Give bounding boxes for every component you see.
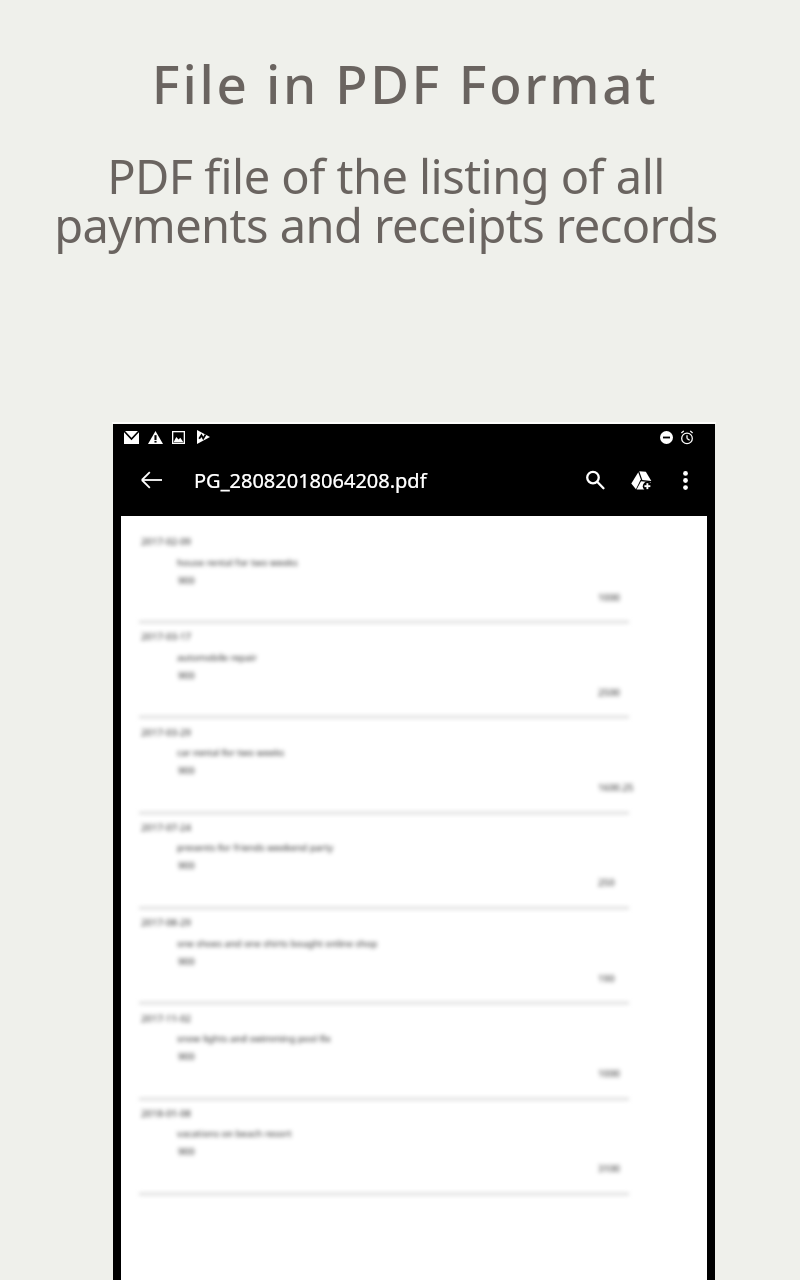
button[interactable]: Save to Drive <box>619 458 663 502</box>
staticText: snow lights and swimming pool fix <box>177 1032 331 1045</box>
staticText: 2500 <box>598 686 620 699</box>
button[interactable]: Search <box>573 458 617 502</box>
staticText: 2017-07-24 <box>141 821 192 834</box>
staticText: 190 <box>598 972 615 985</box>
staticText: 2017-11-02 <box>141 1012 192 1025</box>
staticText: 250 <box>598 876 615 889</box>
staticText: 900 <box>178 669 195 682</box>
staticText: one shoes and one shirts bought online s… <box>177 937 378 950</box>
staticText: 900 <box>178 955 195 968</box>
button[interactable]: Back <box>129 458 173 502</box>
staticText: 900 <box>178 1050 195 1063</box>
staticText: 2018-01-08 <box>141 1107 192 1120</box>
staticText: 900 <box>178 859 195 872</box>
staticText: automobile repair <box>177 651 258 664</box>
staticText: presents for friends weekend party <box>177 841 334 854</box>
staticText: 2017-02-09 <box>141 535 192 548</box>
staticText: 1000 <box>598 591 620 604</box>
staticText: File in PDF Format <box>5 47 800 119</box>
staticText: 3100 <box>598 1162 620 1175</box>
staticText: car rental for two weeks <box>177 746 285 759</box>
staticText: house rental for two weeks <box>177 556 298 569</box>
staticText: 1000 <box>598 1067 620 1080</box>
staticText: 2017-08-29 <box>141 916 192 929</box>
staticText: 2017-03-29 <box>141 726 192 739</box>
staticText: PG_28082018064208.pdf <box>194 467 427 494</box>
staticText: 900 <box>178 574 195 587</box>
staticText: 2017-03-17 <box>141 630 192 643</box>
staticText: vacations on beach resort <box>177 1127 292 1140</box>
button[interactable]: More options <box>667 462 703 498</box>
staticText: 900 <box>178 1145 195 1158</box>
staticText: PDF file of the listing of all payments … <box>0 144 786 256</box>
staticText: 900 <box>178 764 195 777</box>
staticText: 1600.25 <box>598 781 634 794</box>
